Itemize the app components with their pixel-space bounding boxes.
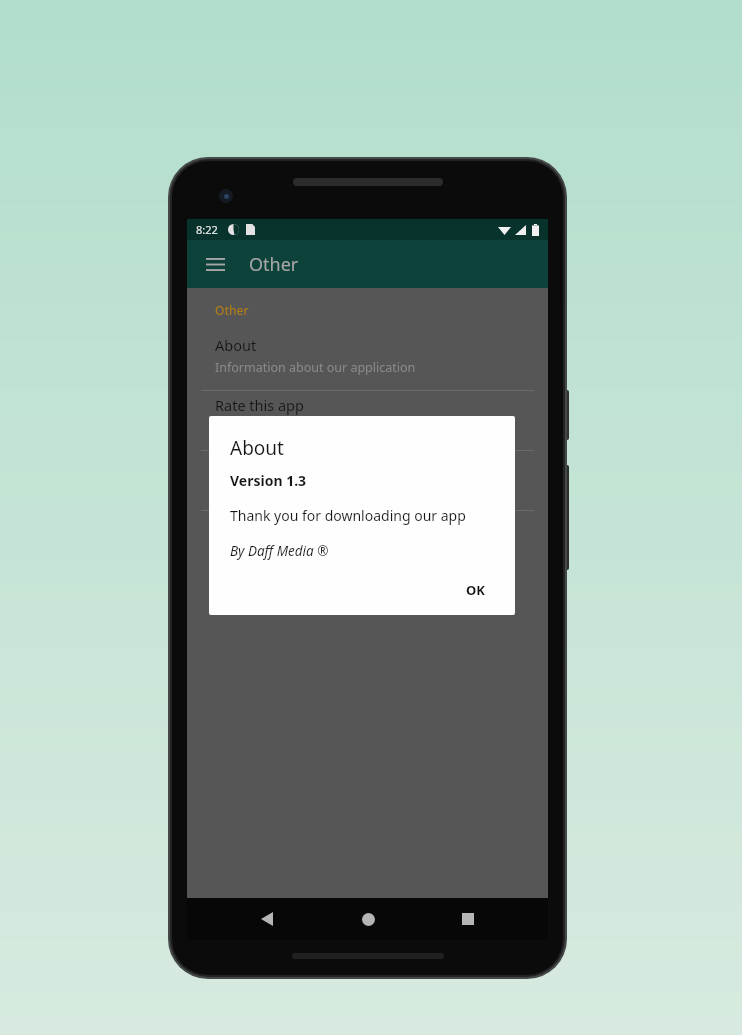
staticText: OK	[466, 581, 485, 599]
button[interactable]: Home	[347, 898, 389, 940]
button[interactable]: About	[187, 331, 548, 390]
staticText: Version 1.3	[230, 471, 307, 490]
staticText: 8:22	[196, 222, 218, 237]
staticText: Thank you for downloading our app	[230, 506, 466, 525]
staticText: Other	[215, 302, 249, 318]
staticText: Discover more applications	[215, 479, 374, 496]
button[interactable]: Rate this app	[187, 391, 548, 450]
staticText: Other	[249, 252, 299, 277]
staticText: By Daff Media ®	[230, 542, 329, 560]
staticText: About	[230, 435, 284, 461]
staticText: Information about our application	[215, 359, 416, 376]
button[interactable]: Open navigation drawer	[197, 246, 233, 282]
button[interactable]: More app	[187, 451, 548, 510]
button[interactable]: Back	[246, 898, 288, 940]
button[interactable]: Recent apps	[447, 898, 489, 940]
staticText: Rate this app	[215, 395, 304, 415]
button[interactable]: OK	[454, 574, 497, 606]
staticText: About	[215, 335, 257, 355]
